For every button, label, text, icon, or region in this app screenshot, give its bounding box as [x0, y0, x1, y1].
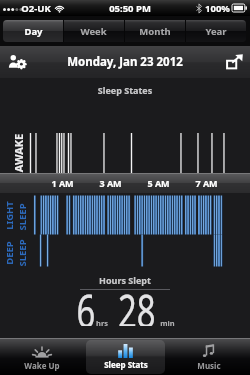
button[interactable]: Month: [124, 20, 185, 42]
staticText: AWAKE: [10, 133, 25, 172]
button[interactable]: Wake Up: [2, 340, 82, 374]
staticText: SLEEP: [16, 203, 29, 231]
staticText: Monday, Jan 23 2012: [67, 54, 183, 70]
staticText: 5 AM: [147, 177, 170, 189]
staticText: Sleep States: [0, 84, 250, 96]
staticText: Month: [139, 25, 171, 38]
staticText: Sleep Stats: [104, 359, 148, 370]
staticText: Week: [80, 25, 107, 38]
staticText: 1 AM: [51, 177, 74, 189]
staticText: Wake Up: [24, 360, 60, 371]
staticText: LIGHT: [3, 201, 16, 230]
staticText: Music: [197, 360, 221, 371]
staticText: 6: [76, 280, 95, 326]
staticText: 3 AM: [99, 177, 122, 189]
button[interactable]: Day: [3, 20, 63, 42]
staticText: 05:50 PM: [109, 2, 151, 15]
button[interactable]: Sleep Stats: [86, 340, 165, 374]
staticText: DEEP: [3, 241, 16, 265]
staticText: Hours Slept: [0, 274, 250, 286]
staticText: Year: [205, 25, 227, 38]
button[interactable]: Share: [218, 46, 250, 78]
staticText: hrs: [96, 318, 108, 328]
button[interactable]: Music: [169, 340, 248, 374]
staticText: O2-UK: [21, 2, 51, 15]
button[interactable]: Week: [63, 20, 124, 42]
staticText: 28: [118, 280, 156, 326]
staticText: SLEEP: [16, 239, 29, 267]
staticText: 7 AM: [195, 177, 218, 189]
staticText: min: [160, 318, 175, 328]
button[interactable]: Profile settings: [0, 46, 34, 78]
staticText: 100%: [205, 2, 230, 15]
staticText: Day: [24, 25, 43, 38]
button[interactable]: Year: [185, 20, 246, 42]
